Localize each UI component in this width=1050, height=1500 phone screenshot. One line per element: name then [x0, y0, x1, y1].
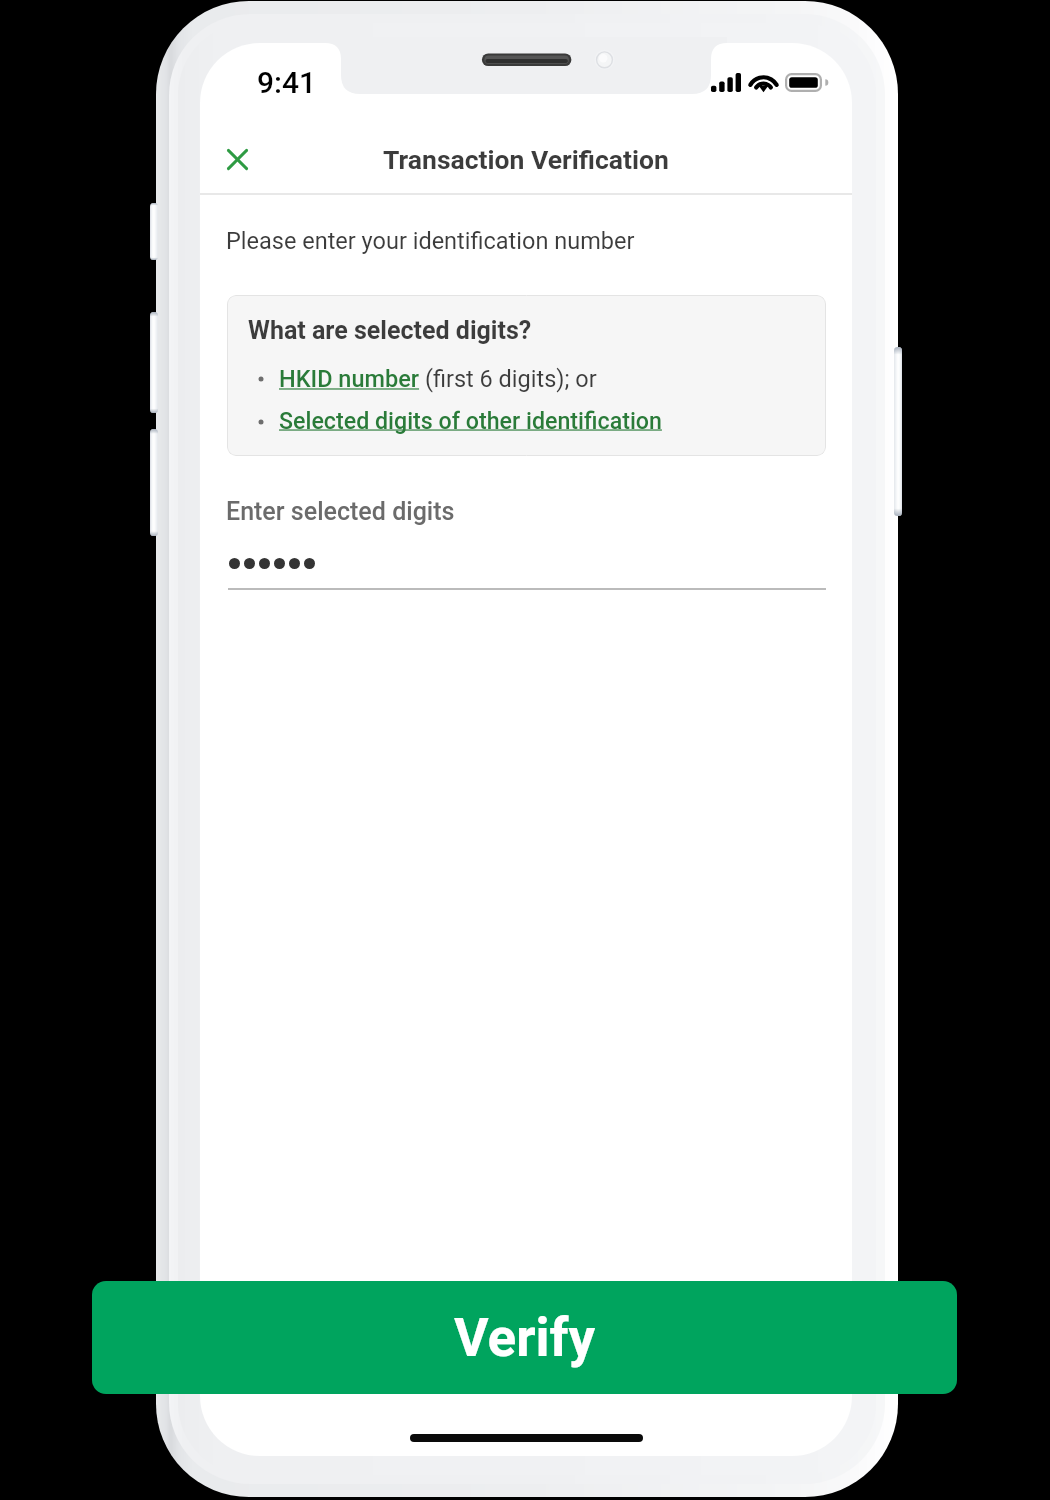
staticText: What are selected digits? [248, 316, 532, 345]
button[interactable]: Selected digits of other identification [279, 407, 662, 434]
button[interactable]: Verify [92, 1281, 957, 1394]
button[interactable]: Close [209, 131, 266, 188]
staticText: Enter selected digits [226, 497, 455, 526]
staticText: Verify [454, 1307, 596, 1369]
button[interactable]: HKID number (first 6 digits); or [279, 365, 597, 393]
staticText: Please enter your identification number [226, 227, 635, 255]
staticText: 9:41 [257, 65, 317, 100]
staticText: Transaction Verification [383, 144, 669, 175]
